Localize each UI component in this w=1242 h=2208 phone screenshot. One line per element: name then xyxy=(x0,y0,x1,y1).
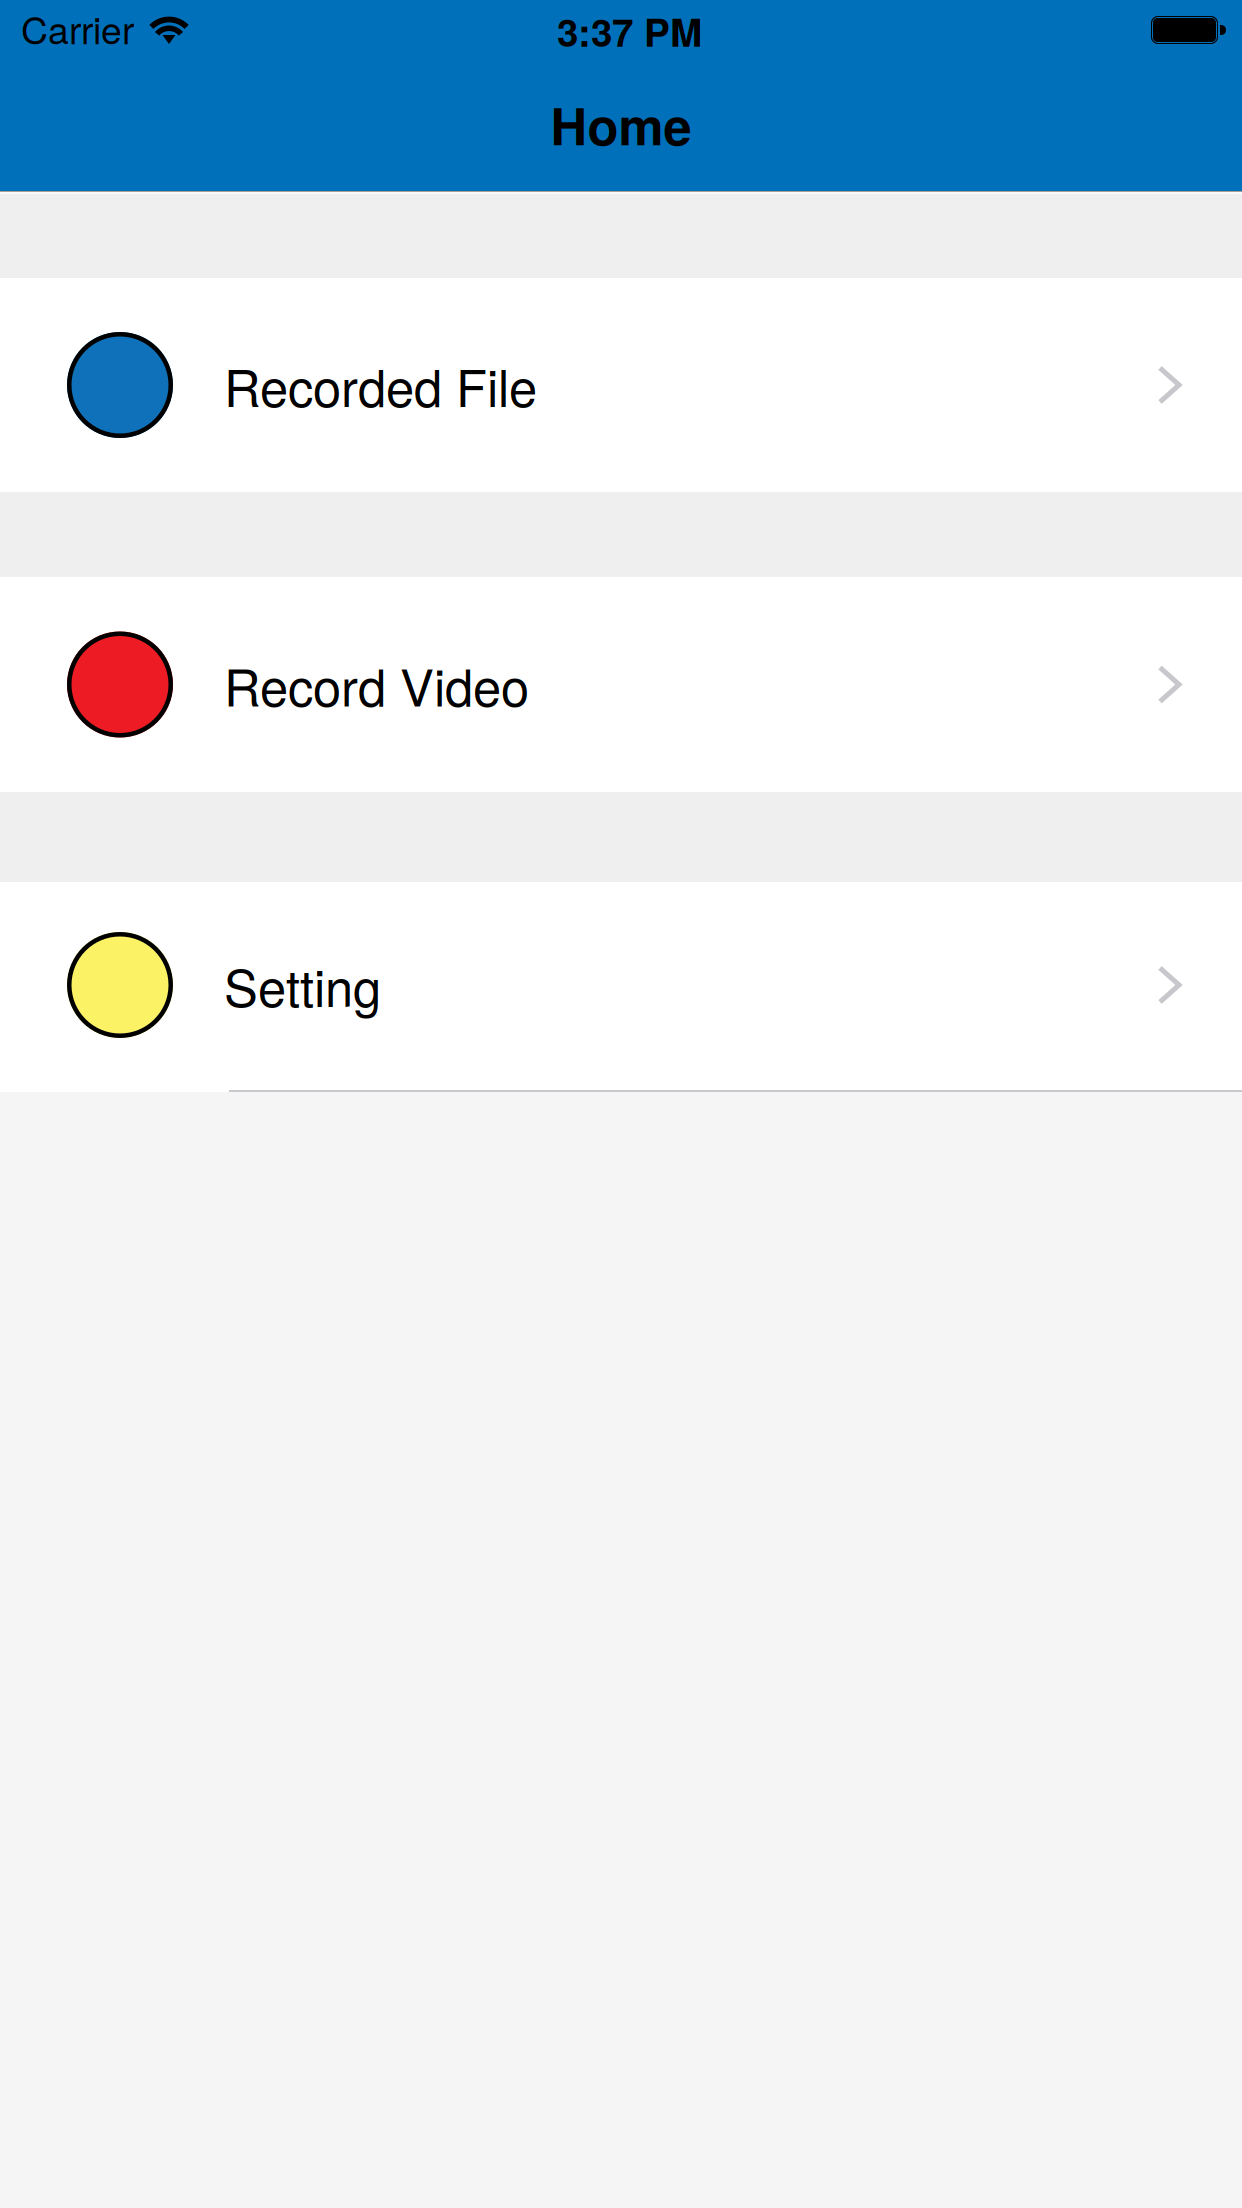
button[interactable]: Setting xyxy=(0,882,1242,1092)
button[interactable]: Record Video xyxy=(0,577,1242,792)
staticText: Recorded File xyxy=(224,349,537,421)
staticText: Record Video xyxy=(224,648,529,721)
staticText: 3:37 PM xyxy=(557,3,702,59)
staticText: Home xyxy=(550,88,691,161)
button[interactable]: Recorded File xyxy=(0,278,1242,492)
staticText: Setting xyxy=(224,949,381,1021)
staticText: Carrier xyxy=(21,1,134,55)
